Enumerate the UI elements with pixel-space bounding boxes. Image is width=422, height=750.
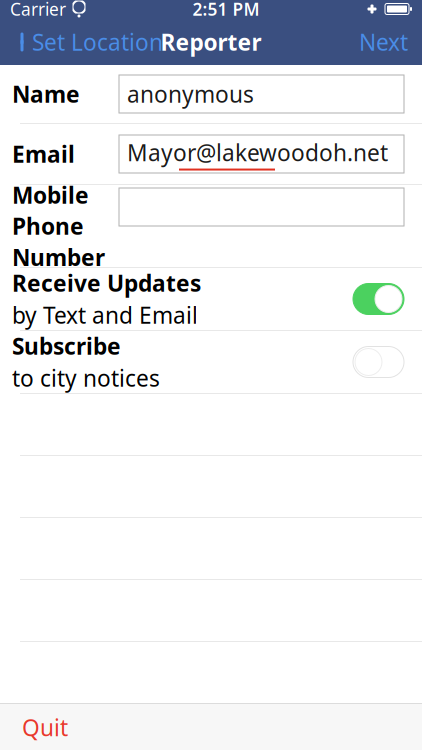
staticText: Subscribe	[12, 331, 121, 361]
staticText: 2:51 PM	[192, 0, 259, 20]
staticText: Number	[12, 242, 105, 272]
staticText: Email	[12, 139, 75, 169]
staticText: Receive Updates	[12, 268, 201, 298]
staticText: Set Location	[32, 27, 163, 57]
staticText: Reporter	[160, 27, 261, 57]
staticText: Phone	[12, 211, 84, 241]
button[interactable]: Receive Updates	[0, 268, 422, 330]
button[interactable]: Set Location	[0, 19, 175, 65]
staticText: anonymous	[127, 79, 254, 109]
staticText: Quit	[22, 712, 68, 742]
staticText: Mobile	[12, 180, 89, 210]
staticText: Carrier	[10, 0, 66, 20]
staticText: to city notices	[12, 363, 160, 393]
button[interactable]: Quit	[0, 704, 90, 750]
button[interactable]: Next	[345, 19, 422, 65]
staticText: Next	[359, 27, 408, 57]
button[interactable]: Subscribe	[0, 331, 422, 393]
staticText: by Text and Email	[12, 300, 198, 330]
staticText: Mayor@lakewoodoh.net	[127, 137, 388, 167]
staticText: Name	[12, 79, 80, 109]
